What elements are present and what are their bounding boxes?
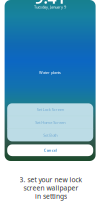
button[interactable]: Cancel (7, 144, 93, 156)
staticText: Cancel (44, 148, 57, 153)
staticText: 3. set your new lock (19, 175, 82, 184)
staticText: Set Lock Screen (37, 107, 64, 112)
staticText: Water plants (39, 70, 61, 75)
button[interactable]: Set Lock Screen (7, 103, 93, 116)
staticText: 9:41 (35, 0, 66, 8)
button[interactable]: Set Home Screen (7, 116, 93, 129)
staticText: Tuesday, January 9 (34, 4, 66, 10)
staticText: Set Both (43, 132, 57, 138)
staticText: screen wallpaper (23, 183, 78, 192)
staticText: Set Home Screen (35, 120, 65, 125)
staticText: in settings (35, 192, 67, 201)
button[interactable]: Set Both (7, 129, 93, 141)
